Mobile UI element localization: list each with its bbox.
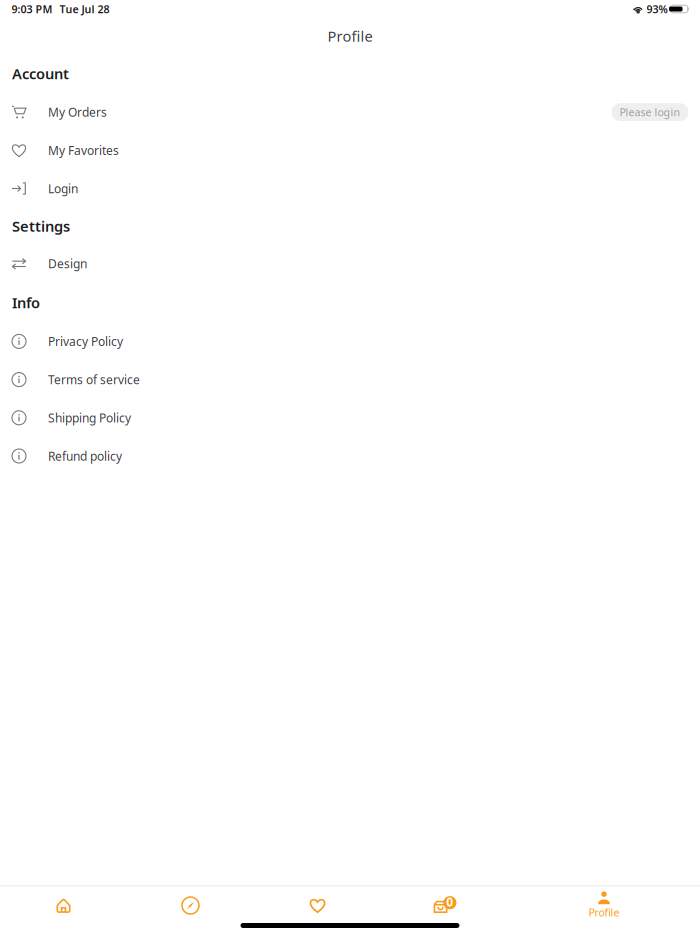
staticText: 9:03 PM <box>11 2 52 16</box>
staticText: 93% <box>646 2 667 16</box>
button[interactable]: Terms of service <box>0 360 700 399</box>
staticText: Tue Jul 28 <box>59 2 109 16</box>
button[interactable]: My Favorites <box>0 131 700 169</box>
staticText: Terms of service <box>48 372 140 387</box>
staticText: Profile <box>327 26 372 46</box>
button[interactable]: Privacy Policy <box>0 322 700 360</box>
staticText: My Favorites <box>48 142 119 158</box>
staticText: Shipping Policy <box>48 410 131 426</box>
staticText: Info <box>12 293 40 312</box>
staticText: Settings <box>12 216 70 236</box>
button[interactable]: Shipping Policy <box>0 399 700 437</box>
button[interactable]: Home <box>0 886 127 924</box>
staticText: Refund policy <box>48 448 122 464</box>
button[interactable]: Profile <box>508 886 700 924</box>
staticText: 0 <box>446 894 453 910</box>
staticText: Privacy Policy <box>48 333 123 349</box>
button[interactable]: My Orders <box>0 93 700 131</box>
button[interactable]: Explore <box>127 886 254 924</box>
staticText: Account <box>12 64 69 83</box>
button[interactable]: Favorites <box>254 886 381 924</box>
staticText: Login <box>48 180 78 196</box>
staticText: Please login <box>619 105 680 119</box>
button[interactable]: Refund policy <box>0 437 700 475</box>
staticText: Design <box>48 256 87 272</box>
staticText: My Orders <box>48 104 107 120</box>
button[interactable]: Cart, 0 items <box>381 886 508 924</box>
button[interactable]: Design <box>0 245 700 283</box>
staticText: Profile <box>588 905 619 919</box>
button[interactable]: Login <box>0 169 700 208</box>
